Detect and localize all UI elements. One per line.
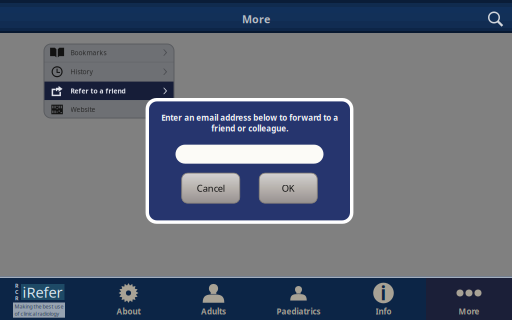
- button[interactable]: Search: [480, 0, 510, 33]
- button[interactable]: Paediatrics: [256, 278, 341, 320]
- button[interactable]: Cancel: [182, 173, 240, 203]
- staticText: R: [15, 295, 18, 302]
- staticText: History: [71, 67, 93, 76]
- staticText: Website: [71, 105, 96, 114]
- staticText: C: [15, 288, 18, 296]
- button[interactable]: About: [86, 278, 171, 320]
- staticText: About: [116, 306, 140, 317]
- button[interactable]: OK: [259, 173, 317, 203]
- button[interactable]: Website: [44, 100, 174, 119]
- staticText: Making the best use of clinical radiolog…: [14, 303, 63, 317]
- staticText: More: [242, 12, 270, 26]
- staticText: iRefer: [22, 282, 62, 302]
- button[interactable]: iRefer: [0, 278, 86, 320]
- button[interactable]: More: [426, 278, 512, 320]
- staticText: Enter an email address below to forward …: [161, 112, 338, 134]
- button[interactable]: Refer to a friend: [44, 82, 174, 100]
- staticText: Refer to a friend: [71, 86, 126, 95]
- staticText: R: [15, 282, 18, 289]
- staticText: i: [380, 281, 386, 305]
- staticText: Adults: [201, 306, 226, 317]
- staticText: OK: [282, 182, 295, 194]
- button[interactable]: History: [44, 62, 174, 81]
- staticText: More: [458, 306, 479, 317]
- staticText: Paediatrics: [276, 306, 320, 317]
- button[interactable]: i: [341, 278, 426, 320]
- staticText: Cancel: [197, 182, 225, 194]
- button[interactable]: Adults: [171, 278, 256, 320]
- button[interactable]: Bookmarks: [44, 43, 174, 62]
- staticText: Bookmarks: [71, 48, 107, 57]
- staticText: Info: [375, 306, 391, 317]
